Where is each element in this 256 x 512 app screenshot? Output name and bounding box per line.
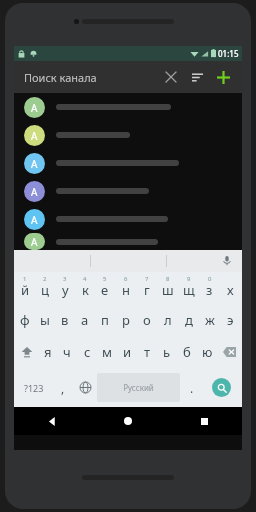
button[interactable]: 5 (95, 272, 115, 304)
staticText: , (61, 380, 65, 396)
staticText: о (143, 311, 151, 329)
staticText: ы (40, 311, 50, 329)
button[interactable]: я (38, 336, 57, 368)
button[interactable]: Home (90, 407, 166, 435)
staticText: Русский (123, 382, 154, 393)
button[interactable]: A (14, 121, 242, 149)
button[interactable]: A (14, 177, 242, 205)
staticText: A (31, 129, 38, 143)
button[interactable]: A (14, 205, 242, 233)
button[interactable]: т (137, 336, 157, 368)
button[interactable]: 9 (178, 272, 199, 304)
button[interactable]: 7 (136, 272, 157, 304)
button[interactable]: Clear (158, 64, 184, 90)
button[interactable]: , (51, 368, 74, 407)
button[interactable]: о (136, 304, 157, 336)
button[interactable]: 2 (35, 272, 55, 304)
staticText: я (44, 343, 52, 361)
button[interactable]: д (178, 304, 199, 336)
staticText: ч (63, 343, 71, 361)
button[interactable]: ю (197, 336, 217, 368)
staticText: з (206, 281, 213, 299)
staticText: б (183, 343, 191, 361)
button[interactable]: ф (15, 304, 35, 336)
staticText: 1 (23, 275, 27, 283)
button[interactable]: 4 (75, 272, 95, 304)
button[interactable]: в (55, 304, 75, 336)
button[interactable]: A (14, 233, 242, 250)
button[interactable]: х (220, 272, 241, 304)
staticText: 5 (103, 275, 107, 283)
staticText: т (144, 343, 151, 361)
button[interactable]: 1 (15, 272, 35, 304)
button[interactable]: . (180, 368, 203, 407)
staticText: г (144, 281, 150, 299)
staticText: ю (202, 343, 213, 361)
button[interactable]: п (95, 304, 115, 336)
button[interactable]: ж (199, 304, 220, 336)
staticText: 01:15 (218, 48, 239, 59)
staticText: A (31, 235, 38, 249)
staticText: в (61, 311, 69, 329)
button[interactable]: 3 (55, 272, 75, 304)
button[interactable]: Add (210, 64, 236, 90)
staticText: с (84, 343, 91, 361)
button[interactable]: ?123 (16, 368, 51, 407)
staticText: ш (162, 281, 174, 299)
staticText: х (227, 281, 234, 299)
button[interactable]: Shift (15, 336, 38, 368)
staticText: A (31, 157, 38, 171)
staticText: а (81, 311, 89, 329)
staticText: A (31, 185, 38, 199)
staticText: 9 (187, 275, 191, 283)
staticText: ь (163, 343, 171, 361)
button[interactable]: A (14, 93, 242, 121)
button[interactable]: Backspace (217, 336, 241, 368)
staticText: щ (183, 281, 195, 299)
button[interactable]: с (77, 336, 97, 368)
staticText: д (185, 311, 193, 329)
button[interactable]: ы (35, 304, 55, 336)
button[interactable]: Search (203, 368, 240, 407)
staticText: 2 (43, 275, 47, 283)
staticText: 7 (145, 275, 149, 283)
button[interactable]: р (115, 304, 136, 336)
staticText: 8 (166, 275, 170, 283)
button[interactable]: Recents (166, 407, 242, 435)
staticText: ?123 (24, 382, 44, 394)
button[interactable]: A (14, 149, 242, 177)
staticText: 4 (83, 275, 87, 283)
staticText: ф (20, 311, 30, 329)
staticText: . (190, 380, 194, 396)
button[interactable]: ь (157, 336, 177, 368)
button[interactable]: 0 (199, 272, 220, 304)
button[interactable]: и (117, 336, 137, 368)
button[interactable]: 8 (157, 272, 178, 304)
button[interactable]: Sort (184, 64, 210, 90)
staticText: к (82, 281, 89, 299)
button[interactable]: 6 (115, 272, 136, 304)
button[interactable]: б (177, 336, 197, 368)
staticText: 6 (124, 275, 128, 283)
staticText: ж (205, 311, 215, 329)
button[interactable]: л (157, 304, 178, 336)
button[interactable]: э (220, 304, 241, 336)
button[interactable]: Русский (97, 373, 180, 402)
button[interactable]: ч (57, 336, 77, 368)
staticText: 3 (63, 275, 67, 283)
staticText: A (31, 213, 38, 227)
staticText: и (123, 343, 132, 361)
staticText: A (31, 101, 38, 115)
staticText: л (164, 311, 172, 329)
button[interactable]: Back (14, 407, 90, 435)
button[interactable]: Voice input (219, 253, 235, 269)
button[interactable]: м (97, 336, 117, 368)
button[interactable]: а (75, 304, 95, 336)
staticText: н (122, 281, 130, 299)
staticText: э (227, 311, 234, 329)
staticText: у (62, 281, 69, 299)
staticText: п (101, 311, 109, 329)
staticText: е (101, 281, 109, 299)
button[interactable]: Change language (74, 368, 97, 407)
staticText: Поиск канала (24, 70, 97, 85)
